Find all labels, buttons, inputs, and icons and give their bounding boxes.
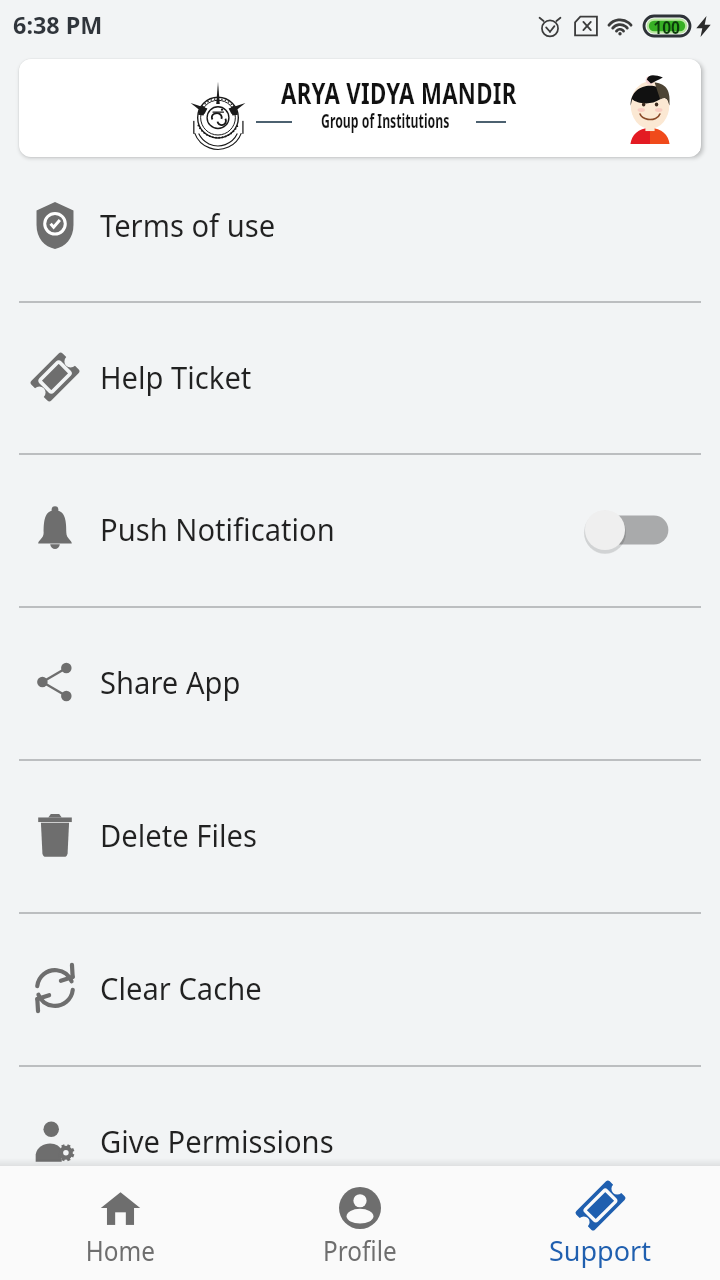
- button[interactable]: Share App: [0, 606, 720, 759]
- button[interactable]: Terms of use: [0, 149, 720, 302]
- staticText: Push Notification: [100, 509, 335, 550]
- staticText: Support: [549, 1232, 651, 1269]
- button[interactable]: Clear Cache: [0, 912, 720, 1065]
- button[interactable]: Push notification toggle: [583, 506, 671, 554]
- staticText: Terms of use: [100, 205, 276, 246]
- staticText: Share App: [100, 662, 241, 703]
- button[interactable]: Help Ticket: [0, 301, 720, 454]
- staticText: ARYA VIDYA MANDIR: [281, 73, 517, 112]
- other: Profile avatar: [627, 72, 673, 144]
- button[interactable]: Give Permissions: [0, 1065, 720, 1218]
- button[interactable]: Support: [480, 1166, 720, 1280]
- staticText: Profile: [323, 1232, 397, 1269]
- staticText: 100: [653, 16, 681, 36]
- staticText: Clear Cache: [100, 968, 262, 1009]
- staticText: Group of Institutions: [321, 107, 450, 134]
- staticText: Home: [86, 1232, 155, 1269]
- staticText: Delete Files: [100, 815, 257, 856]
- button[interactable]: Delete Files: [0, 759, 720, 912]
- button[interactable]: Push Notification: [0, 453, 720, 606]
- staticText: Help Ticket: [100, 357, 252, 398]
- button[interactable]: Profile: [240, 1166, 480, 1280]
- button[interactable]: ARYA VIDYA MANDIR: [19, 59, 701, 157]
- button[interactable]: Home: [0, 1166, 240, 1280]
- staticText: 6:38 PM: [13, 8, 103, 41]
- staticText: Give Permissions: [100, 1121, 334, 1162]
